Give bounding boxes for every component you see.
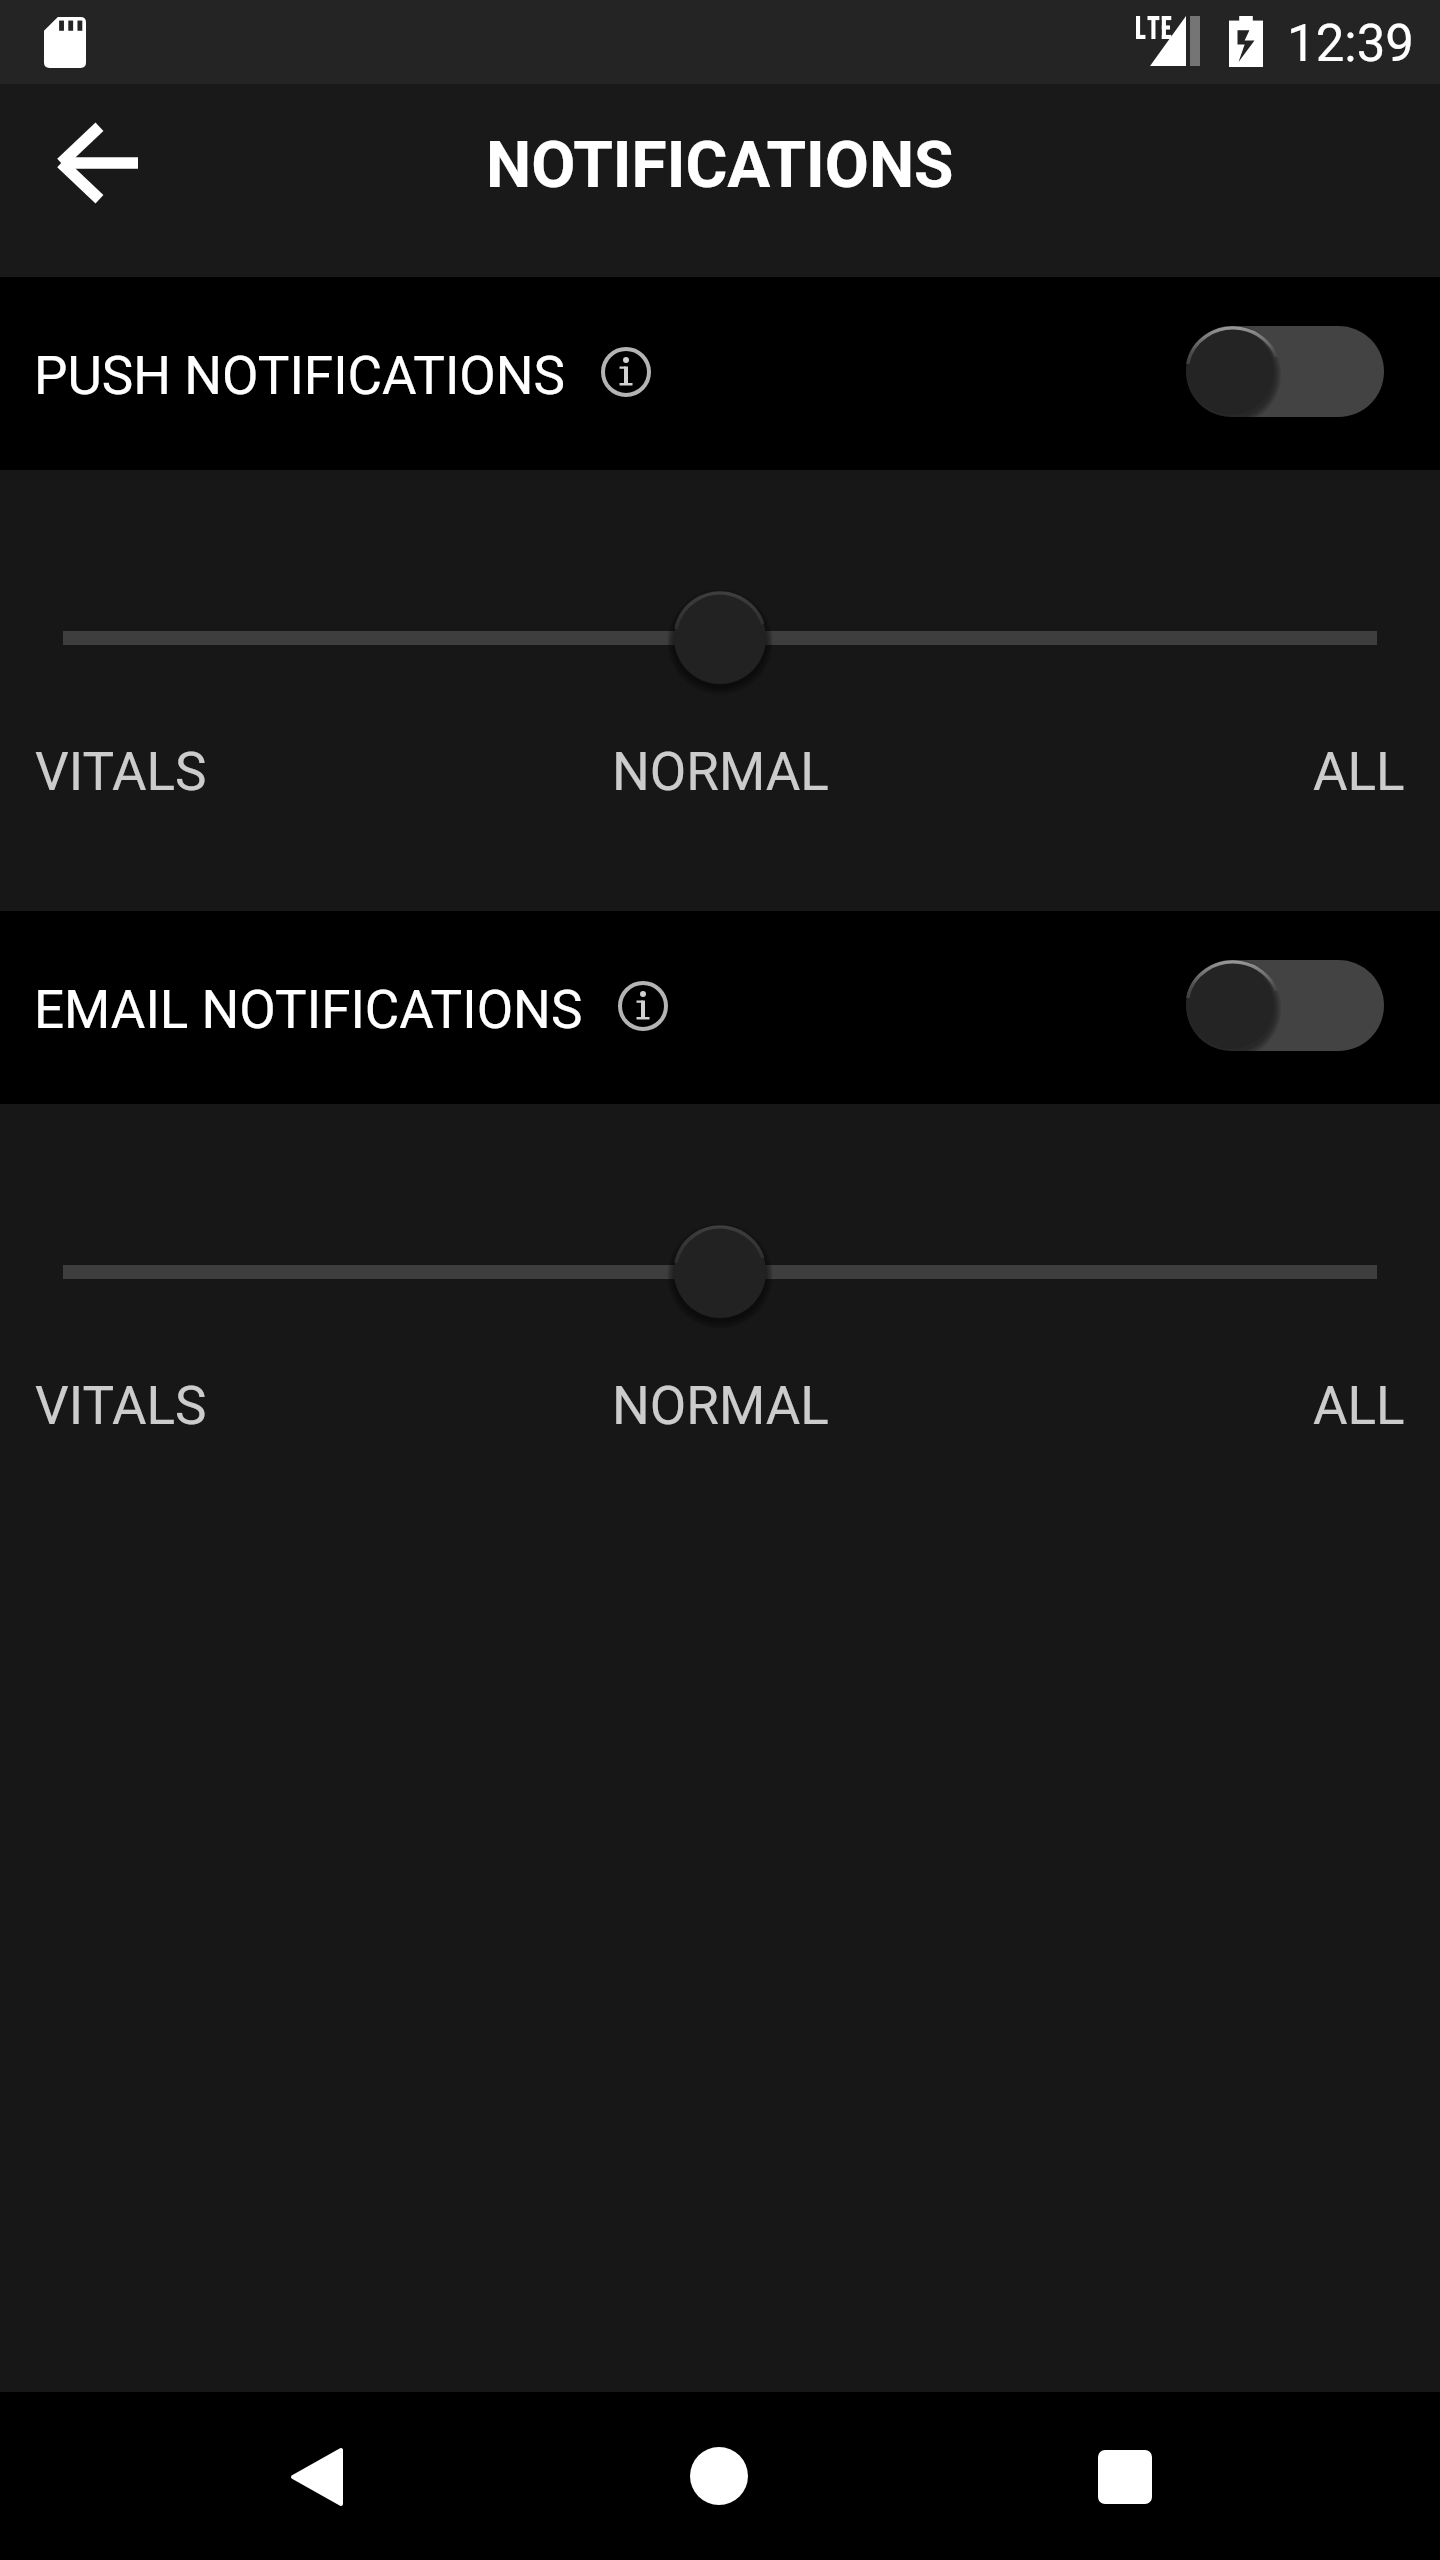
staticText: PUSH NOTIFICATIONS <box>34 345 566 407</box>
staticText: 12:39 <box>1287 14 1415 74</box>
button[interactable]: PUSH NOTIFICATIONS <box>0 277 1440 470</box>
button[interactable]: Toggle PUSH NOTIFICATIONS <box>1186 326 1384 417</box>
staticText: ALL <box>1313 1375 1405 1437</box>
staticText: VITALS <box>35 741 207 803</box>
staticText: EMAIL NOTIFICATIONS <box>34 979 583 1041</box>
staticText: NOTIFICATIONS <box>486 128 954 203</box>
staticText: VITALS <box>35 1375 207 1437</box>
button[interactable]: Recent apps <box>1036 2414 1216 2539</box>
button[interactable]: Back <box>56 121 138 205</box>
button[interactable]: Back <box>226 2414 406 2539</box>
button[interactable]: Toggle EMAIL NOTIFICATIONS <box>1186 960 1384 1051</box>
staticText: NORMAL <box>612 741 829 803</box>
staticText: ALL <box>1313 741 1405 803</box>
button[interactable]: EMAIL NOTIFICATIONS <box>0 911 1440 1104</box>
staticText: NORMAL <box>612 1375 829 1437</box>
button[interactable]: Home <box>630 2414 810 2539</box>
